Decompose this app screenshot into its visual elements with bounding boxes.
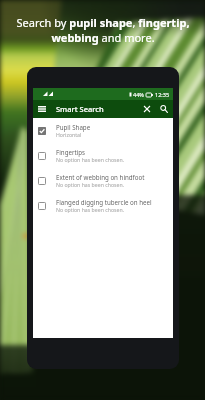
staticText: No option has been chosen. (56, 181, 125, 188)
staticText: webbing and more. (51, 30, 155, 45)
staticText: No option has been chosen. (56, 206, 125, 213)
button[interactable]: Flanged digging tubercle on heel (33, 193, 173, 218)
staticText: Search by pupil shape, fingertip, (16, 15, 190, 30)
button[interactable]: Search (155, 100, 173, 118)
staticText: Flanged digging tubercle on heel (56, 198, 152, 206)
button[interactable]: Fingertips (33, 143, 173, 168)
staticText: Smart Search (56, 104, 104, 114)
button[interactable]: Open navigation menu (33, 100, 50, 118)
staticText: Extent of webbing on hindfoot (56, 173, 145, 181)
staticText: No option has been chosen. (56, 156, 125, 163)
button[interactable]: Clear search (139, 100, 155, 118)
button[interactable]: Extent of webbing on hindfoot (33, 168, 173, 193)
staticText: Pupil Shape (56, 123, 91, 131)
staticText: 44% (133, 91, 144, 98)
staticText: Horizontal (56, 131, 82, 138)
staticText: Fingertips (56, 148, 86, 156)
staticText: 12:35 (155, 91, 170, 98)
button[interactable]: Pupil Shape (33, 118, 173, 143)
